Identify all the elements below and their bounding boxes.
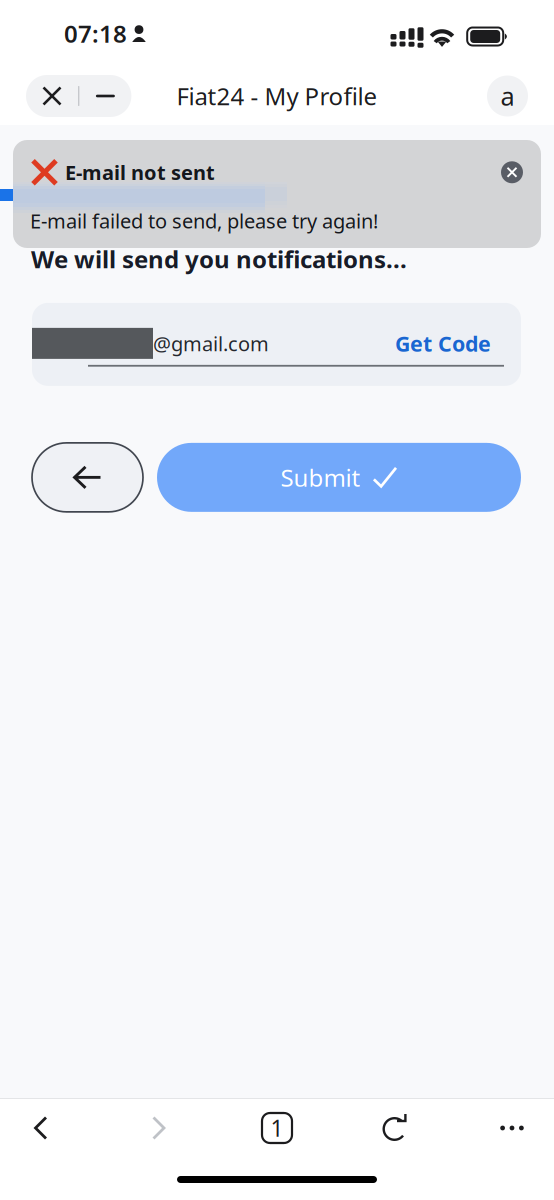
staticText: 1	[270, 1113, 283, 1143]
staticText: Fiat24 - My Profile	[176, 80, 377, 112]
button[interactable]: Get Code	[395, 329, 491, 357]
staticText: @gmail.com	[153, 330, 269, 357]
staticText: E-mail failed to send, please try again!	[30, 208, 378, 234]
staticText: 07:18	[64, 18, 127, 49]
button[interactable]: Back	[0, 1100, 100, 1156]
button[interactable]: Tabs	[218, 1100, 336, 1156]
staticText: Get Code	[395, 329, 491, 357]
staticText: E-mail not sent	[65, 159, 215, 186]
staticText: a	[500, 79, 514, 113]
button[interactable]: Dismiss	[501, 161, 523, 183]
button[interactable]: Submit	[157, 443, 521, 512]
button[interactable]: More	[454, 1100, 554, 1156]
button[interactable]: Close	[26, 75, 78, 117]
button[interactable]: Back	[32, 443, 143, 512]
button[interactable]: Page settings	[487, 75, 528, 116]
button[interactable]: Forward	[100, 1100, 218, 1156]
staticText: Submit	[280, 461, 360, 493]
staticText: We will send you notifications...	[31, 243, 407, 275]
button[interactable]: Minimize	[79, 75, 131, 117]
button[interactable]: Reload	[336, 1100, 454, 1156]
